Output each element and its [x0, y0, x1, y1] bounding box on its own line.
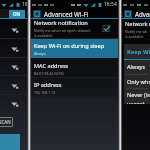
- button[interactable]: Network notification: [31, 19, 118, 38]
- staticText: Advanc: [135, 10, 150, 18]
- staticText: Keep Wi-Fi on during sleep: [34, 42, 105, 50]
- button[interactable]: Never (in: [124, 89, 150, 104]
- staticText: SCAN: [0, 119, 11, 125]
- staticText: 192.168.1.13: [34, 90, 56, 95]
- staticText: ON: [13, 11, 21, 17]
- button[interactable]: Advanced Wi-Fi: [31, 9, 118, 19]
- staticText: Network n: [125, 20, 150, 28]
- button[interactable]: [0, 76, 28, 95]
- button[interactable]: Advanc: [122, 9, 150, 19]
- staticText: 16:54: [22, 1, 28, 8]
- staticText: Only who: [127, 78, 150, 86]
- button[interactable]: IP address: [31, 78, 118, 97]
- staticText: Never (in: [127, 91, 150, 99]
- button[interactable]: Only who: [124, 75, 150, 88]
- staticText: MAC address: [34, 62, 69, 70]
- staticText: usage): [127, 100, 145, 104]
- staticText: is available: [125, 34, 144, 39]
- button[interactable]: Always: [124, 60, 150, 74]
- button[interactable]: Keep Wi-Fi on during sleep: [31, 39, 118, 58]
- button[interactable]: [0, 94, 28, 113]
- staticText: IP address: [34, 81, 62, 89]
- staticText: 16:54: [104, 1, 117, 8]
- button[interactable]: [0, 20, 28, 39]
- button[interactable]: [0, 39, 28, 58]
- staticText: Always: [34, 51, 46, 56]
- button[interactable]: MAC address: [31, 58, 118, 77]
- staticText: Keep Wi-: [127, 48, 150, 56]
- staticText: Network notification: [34, 19, 88, 27]
- staticText: Notify me when an open network: [34, 28, 91, 33]
- button[interactable]: SCAN: [0, 117, 13, 127]
- staticText: B4:07:F8:42:6F:FB: [34, 71, 64, 76]
- staticText: Always: [127, 63, 146, 71]
- button[interactable]: [0, 57, 28, 76]
- staticText: Advanced Wi-Fi: [44, 10, 89, 18]
- staticText: Notify me wh: [125, 29, 148, 34]
- staticText: is available: [34, 33, 53, 38]
- button[interactable]: ON: [9, 10, 25, 18]
